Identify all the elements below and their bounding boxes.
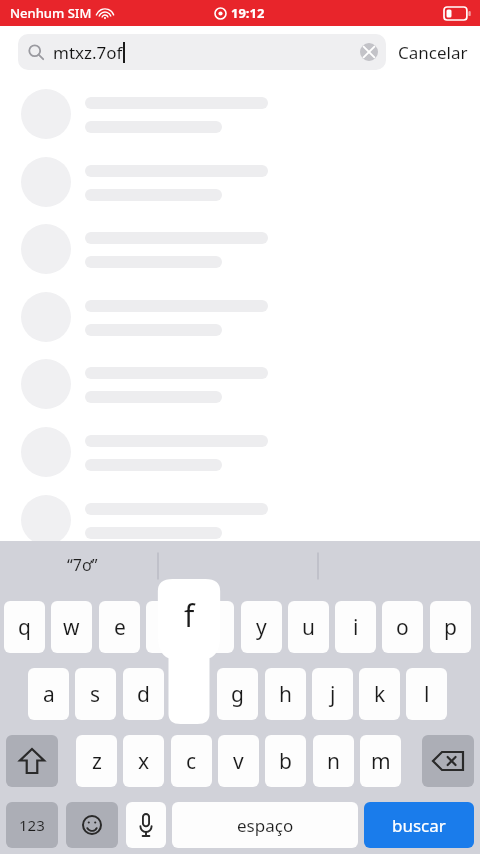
staticText: q xyxy=(18,613,31,642)
staticText: buscar xyxy=(392,814,446,837)
staticText: g xyxy=(231,680,244,709)
staticText: y xyxy=(256,613,267,642)
button[interactable]: v xyxy=(218,735,259,787)
button[interactable]: y xyxy=(241,601,282,653)
button[interactable]: mtxz.7of xyxy=(18,34,386,70)
button[interactable]: Shift xyxy=(6,735,58,787)
button[interactable]: espaço xyxy=(172,802,358,848)
staticText: j xyxy=(330,680,336,709)
staticText: b xyxy=(279,747,292,776)
staticText: “7ơ” xyxy=(67,554,98,576)
staticText: c xyxy=(186,747,197,776)
button[interactable]: a xyxy=(28,668,69,720)
button[interactable]: o xyxy=(382,601,423,653)
button[interactable]: n xyxy=(313,735,354,787)
button[interactable]: Apagar xyxy=(422,735,474,787)
staticText: i xyxy=(353,613,359,642)
staticText: w xyxy=(63,613,80,642)
button[interactable]: x xyxy=(123,735,164,787)
staticText: k xyxy=(374,680,386,709)
button[interactable]: q xyxy=(4,601,45,653)
staticText: e xyxy=(114,613,126,642)
staticText: z xyxy=(92,747,102,776)
button[interactable]: w xyxy=(51,601,92,653)
button[interactable]: m xyxy=(360,735,401,787)
staticText: h xyxy=(279,680,292,709)
staticText: n xyxy=(327,747,340,776)
staticText: p xyxy=(444,613,457,642)
button[interactable]: b xyxy=(265,735,306,787)
staticText: 123 xyxy=(19,815,45,835)
button[interactable]: Cancelar xyxy=(386,41,480,64)
button[interactable]: e xyxy=(99,601,140,653)
staticText: f xyxy=(184,595,195,636)
staticText: s xyxy=(90,680,101,709)
button[interactable]: l xyxy=(406,668,447,720)
button[interactable]: h xyxy=(265,668,306,720)
button[interactable]: Limpar xyxy=(360,43,378,61)
staticText: o xyxy=(396,613,409,642)
button[interactable]: k xyxy=(359,668,400,720)
staticText: Nenhum SIM xyxy=(10,4,92,22)
button[interactable]: t xyxy=(193,601,234,653)
button[interactable]: i xyxy=(335,601,376,653)
staticText: 19:12 xyxy=(231,4,265,22)
staticText: v xyxy=(233,747,244,776)
staticText: m xyxy=(371,747,391,776)
button[interactable]: g xyxy=(217,668,258,720)
button[interactable]: buscar xyxy=(364,802,474,848)
staticText: d xyxy=(137,680,150,709)
button[interactable]: Emoji xyxy=(66,802,118,848)
button[interactable]: Ditar xyxy=(126,802,166,848)
staticText: u xyxy=(302,613,315,642)
button[interactable]: u xyxy=(288,601,329,653)
button[interactable]: “7ơ” xyxy=(46,541,118,589)
staticText: mtxz.7of xyxy=(53,41,123,64)
button[interactable]: p xyxy=(430,601,471,653)
button[interactable]: j xyxy=(312,668,353,720)
button[interactable]: 123 xyxy=(6,802,58,848)
button[interactable]: d xyxy=(123,668,164,720)
staticText: espaço xyxy=(237,814,294,837)
button[interactable]: c xyxy=(171,735,212,787)
staticText: x xyxy=(138,747,150,776)
button[interactable]: s xyxy=(75,668,116,720)
staticText: Cancelar xyxy=(398,41,468,64)
button[interactable] xyxy=(170,668,211,720)
staticText: a xyxy=(43,680,55,709)
button[interactable]: r xyxy=(146,601,187,653)
staticText: l xyxy=(424,680,430,709)
button[interactable]: z xyxy=(76,735,117,787)
